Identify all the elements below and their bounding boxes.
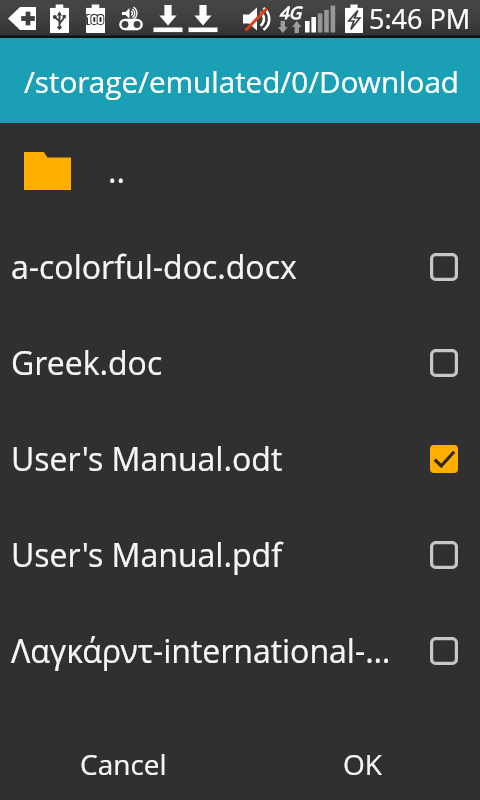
staticText: a-colorful-doc.docx (11, 245, 414, 289)
button[interactable]: User's Manual.odt (0, 411, 480, 507)
button[interactable]: Λαγκάρντ-international-… (0, 603, 480, 699)
button[interactable]: User's Manual.pdf (0, 507, 480, 603)
button[interactable]: OK (240, 699, 480, 800)
staticText: Λαγκάρντ-international-… (11, 629, 414, 673)
button[interactable]: Not selected (422, 341, 466, 385)
button[interactable]: Cancel (0, 699, 240, 800)
other: Parent folder (24, 152, 71, 190)
staticText: Greek.doc (11, 341, 414, 385)
button[interactable]: Not selected (422, 629, 466, 673)
button[interactable]: Selected (422, 437, 466, 481)
staticText: Cancel (80, 745, 167, 783)
button[interactable]: Greek.doc (0, 315, 480, 411)
button[interactable]: Not selected (422, 245, 466, 289)
button[interactable]: Not selected (422, 533, 466, 577)
staticText: User's Manual.pdf (11, 533, 414, 577)
staticText: 4G (279, 1, 302, 24)
staticText: 5:46 PM (369, 0, 471, 37)
button[interactable]: a-colorful-doc.docx (0, 219, 480, 315)
staticText: User's Manual.odt (11, 437, 414, 481)
staticText: /storage/emulated/0/Download (24, 61, 460, 101)
button[interactable]: Parent folder (0, 123, 480, 219)
staticText: OK (343, 745, 382, 783)
staticText: .. (108, 149, 126, 193)
